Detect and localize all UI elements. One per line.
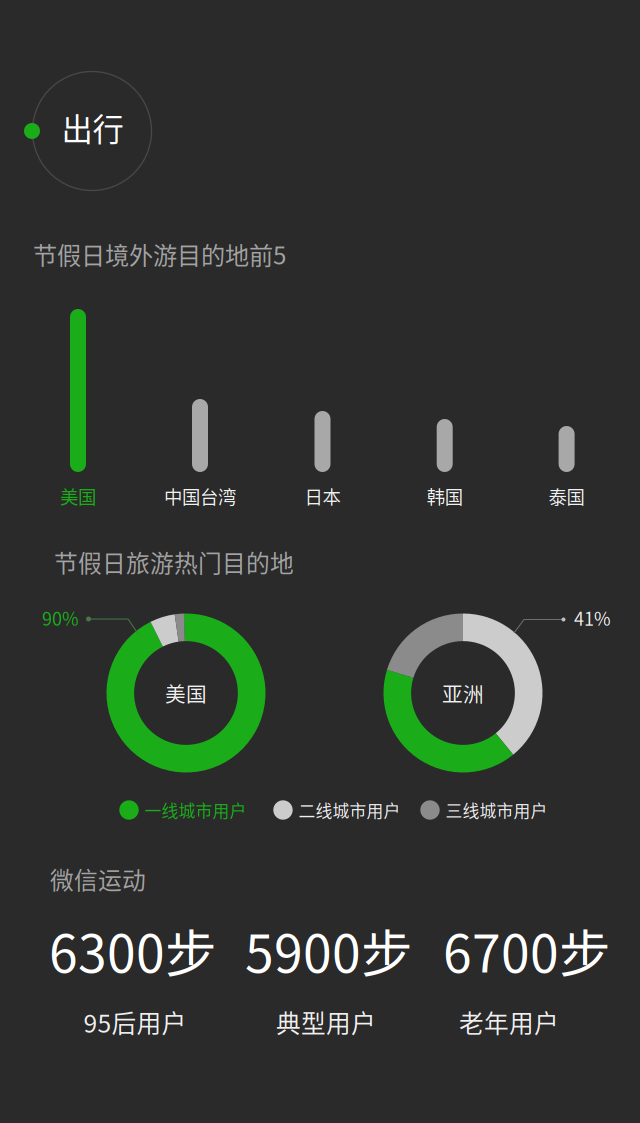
staticText: 三线城市用户 — [445, 798, 547, 822]
staticText: 5900步 — [245, 913, 413, 987]
staticText: 90% — [42, 605, 79, 631]
staticText: 美国 — [165, 678, 207, 708]
staticText: 95后用户 — [83, 1004, 186, 1040]
staticText: 出行 — [61, 105, 123, 150]
staticText: 日本 — [304, 483, 340, 509]
staticText: 泰国 — [549, 483, 585, 509]
staticText: 老年用户 — [459, 1004, 559, 1040]
staticText: 亚洲 — [442, 678, 484, 708]
staticText: 6300步 — [49, 913, 217, 987]
staticText: 节假日境外游目的地前5 — [33, 236, 286, 271]
staticText: 二线城市用户 — [298, 798, 400, 822]
staticText: 韩国 — [427, 483, 463, 509]
staticText: 典型用户 — [276, 1004, 376, 1040]
staticText: 节假日旅游热门目的地 — [54, 545, 294, 579]
staticText: 一线城市用户 — [144, 798, 246, 822]
staticText: 6700步 — [443, 913, 611, 987]
staticText: 美国 — [60, 483, 96, 509]
staticText: 中国台湾 — [164, 483, 236, 509]
staticText: 41% — [574, 605, 611, 631]
staticText: 微信运动 — [50, 862, 146, 896]
